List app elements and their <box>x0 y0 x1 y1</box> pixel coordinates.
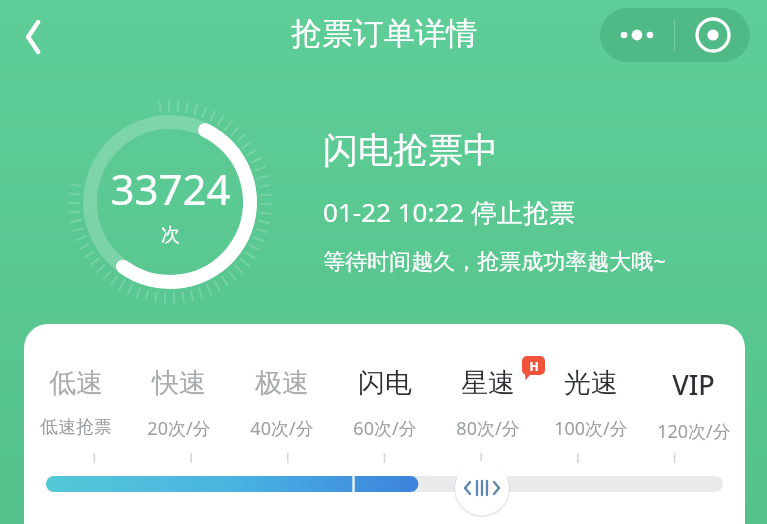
staticText: 01-22 10:22 停止抢票 <box>323 194 575 230</box>
staticText: 低速 <box>49 366 103 400</box>
staticText: 80次/分 <box>456 416 520 441</box>
staticText: 次 <box>161 223 180 247</box>
button[interactable]: Adjust speed <box>454 460 510 516</box>
button[interactable]: Locate <box>675 8 750 62</box>
button[interactable]: 极速 <box>230 366 333 441</box>
staticText: 120次/分 <box>657 419 731 444</box>
staticText: H <box>529 358 539 374</box>
staticText: 33724 <box>110 160 231 217</box>
staticText: 等待时间越久，抢票成功率越大哦~ <box>323 245 666 275</box>
staticText: 光速 <box>564 366 618 400</box>
button[interactable]: Back <box>4 10 58 64</box>
staticText: 低速抢票 <box>40 416 112 439</box>
button[interactable]: VIP <box>642 366 745 444</box>
staticText: VIP <box>672 366 715 403</box>
staticText: 抢票订单详情 <box>291 14 477 53</box>
button[interactable]: More options <box>600 8 674 62</box>
button[interactable]: 快速 <box>127 366 230 441</box>
staticText: 100次/分 <box>554 416 628 441</box>
staticText: 20次/分 <box>147 416 211 441</box>
staticText: 星速 <box>461 366 515 400</box>
staticText: 闪电抢票中 <box>323 128 498 172</box>
staticText: 闪电 <box>358 366 412 400</box>
button[interactable]: 光速 <box>539 366 642 441</box>
button[interactable]: 低速 <box>24 366 127 439</box>
staticText: 快速 <box>152 366 206 400</box>
staticText: 极速 <box>255 366 309 400</box>
staticText: 40次/分 <box>250 416 314 441</box>
staticText: 60次/分 <box>353 416 417 441</box>
button[interactable]: 星速 <box>436 366 539 441</box>
button[interactable]: 闪电 <box>333 366 436 441</box>
